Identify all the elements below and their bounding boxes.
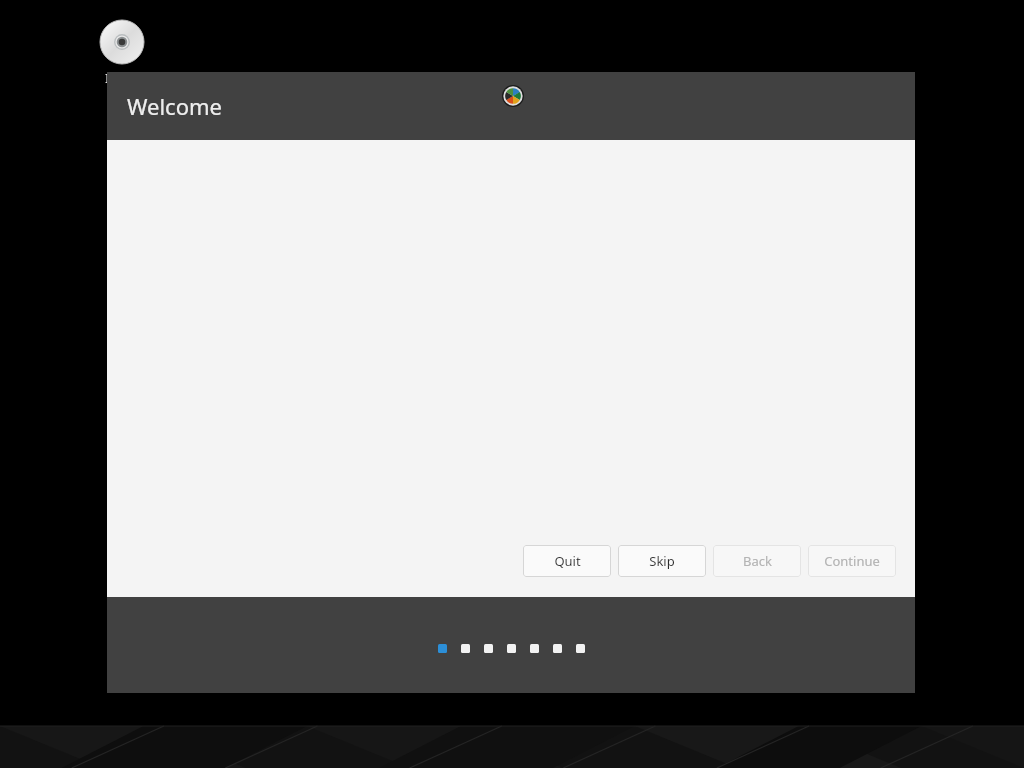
staticText: Back xyxy=(743,552,772,570)
button[interactable]: Step 3 xyxy=(484,644,493,653)
button[interactable]: Step 4 xyxy=(507,644,516,653)
button[interactable]: Distribution logo xyxy=(502,85,524,107)
button[interactable]: Step 5 xyxy=(530,644,539,653)
staticText: Install xyxy=(105,70,140,86)
button[interactable]: Step 7 xyxy=(576,644,585,653)
button[interactable]: Quit xyxy=(523,545,611,577)
button[interactable]: Step 2 xyxy=(461,644,470,653)
staticText: Continue xyxy=(824,552,880,570)
button[interactable]: Continue xyxy=(808,545,896,577)
staticText: Quit xyxy=(554,552,581,570)
button[interactable]: Skip xyxy=(618,545,706,577)
button[interactable]: Back xyxy=(713,545,801,577)
button[interactable]: Step 1 xyxy=(438,644,447,653)
staticText: Welcome xyxy=(127,91,222,121)
button[interactable]: Step 6 xyxy=(553,644,562,653)
staticText: Skip xyxy=(649,552,675,570)
button[interactable]: Install xyxy=(75,18,169,86)
